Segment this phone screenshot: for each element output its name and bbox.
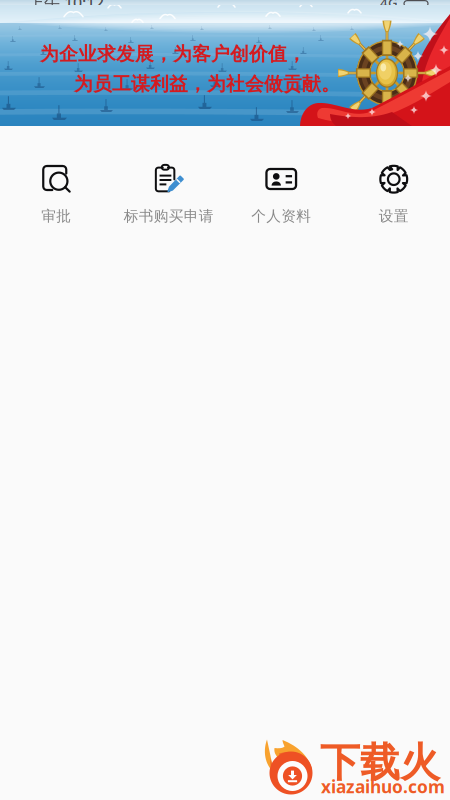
staticText: 下载火 [320,738,440,787]
staticText: 4G [380,0,398,11]
staticText: 个人资料 [251,207,311,225]
staticText: 设置 [379,207,409,225]
button[interactable]: 标书购买申请 [112,164,225,242]
staticText: 标书购买申请 [124,207,214,225]
button[interactable]: 设置 [337,164,450,242]
staticText: 上午 10:12 [28,0,104,13]
button[interactable]: 个人资料 [225,164,337,242]
staticText: 为企业求发展，为客户创价值， [40,43,306,65]
staticText: xiazaihuo.com [321,775,445,798]
staticText: 审批 [41,207,71,225]
staticText: 为员工谋利益，为社会做贡献。 [74,72,340,95]
button[interactable]: 审批 [0,164,112,242]
